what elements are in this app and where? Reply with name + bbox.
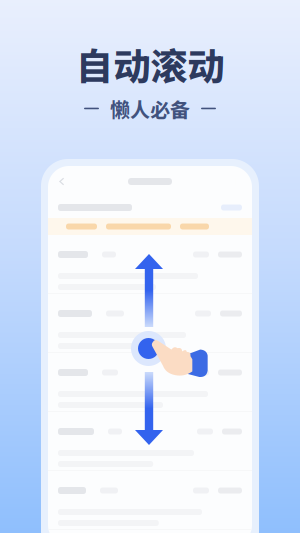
staticText: 自动滚动: [76, 37, 224, 91]
staticText: 懒人必备: [110, 94, 190, 123]
